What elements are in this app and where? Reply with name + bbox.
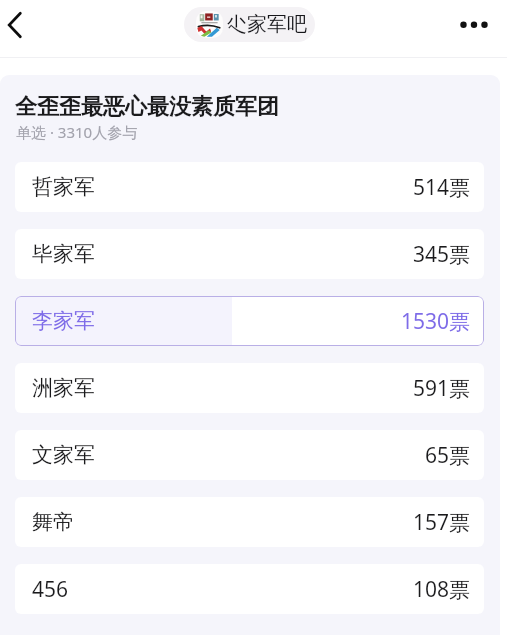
button[interactable]: More options xyxy=(448,4,498,46)
button[interactable]: 毕家军 xyxy=(15,229,484,279)
staticText: 洲家军 xyxy=(32,375,95,401)
staticText: 全歪歪最恶心最没素质军团 xyxy=(15,93,279,121)
staticText: 157票 xyxy=(413,508,471,537)
button[interactable]: 洲家军 xyxy=(15,363,484,413)
staticText: 345票 xyxy=(413,240,471,269)
staticText: 456 xyxy=(32,575,69,604)
button[interactable]: 456 xyxy=(15,564,484,614)
staticText: 1530票 xyxy=(401,307,471,336)
button[interactable]: 哲家军 xyxy=(15,162,484,212)
staticText: 591票 xyxy=(413,374,471,403)
staticText: 514票 xyxy=(413,173,471,202)
button[interactable]: 舞帝 xyxy=(15,497,484,547)
button[interactable]: 尐家军吧 xyxy=(184,7,315,42)
staticText: 哲家军 xyxy=(32,174,95,200)
staticText: 65票 xyxy=(425,441,471,470)
staticText: 108票 xyxy=(413,575,471,604)
staticText: 文家军 xyxy=(32,442,95,468)
staticText: 毕家军 xyxy=(32,241,95,267)
staticText: 尐家军吧 xyxy=(227,12,307,37)
button[interactable]: 李家军 xyxy=(15,296,484,346)
staticText: 单选 · 3310人参与 xyxy=(16,122,138,142)
staticText: 舞帝 xyxy=(32,509,74,535)
staticText: 李家军 xyxy=(32,308,95,334)
button[interactable]: 文家军 xyxy=(15,430,484,480)
button[interactable]: Back xyxy=(0,0,30,50)
